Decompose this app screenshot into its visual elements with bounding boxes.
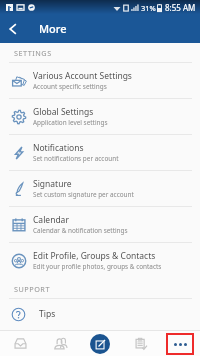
button[interactable]: More: [166, 333, 194, 355]
button[interactable]: Signature: [0, 171, 200, 207]
staticText: Calendar: [33, 214, 69, 226]
staticText: Application level settings: [33, 118, 108, 127]
button[interactable]: Tips: [11, 299, 200, 329]
staticText: Signature: [33, 178, 72, 190]
button[interactable]: Calendar: [0, 207, 200, 243]
staticText: Global Settings: [33, 106, 94, 118]
staticText: Notifications: [33, 142, 84, 154]
button[interactable]: Compose: [90, 334, 110, 354]
staticText: More: [39, 21, 67, 36]
staticText: 8:55 AM: [165, 2, 196, 13]
button[interactable]: Back: [0, 16, 26, 42]
staticText: Set custom signature per account: [33, 190, 134, 199]
button[interactable]: Edit Profile, Groups & Contacts: [0, 243, 200, 279]
button[interactable]: Tasks: [120, 331, 160, 356]
staticText: Edit Profile, Groups & Contacts: [33, 250, 156, 262]
button[interactable]: Contacts: [40, 331, 80, 356]
button[interactable]: Global Settings: [0, 99, 200, 135]
staticText: Account specific settings: [33, 82, 107, 91]
staticText: Edit your profile photos, groups & conta…: [33, 262, 162, 271]
staticText: 31%: [141, 3, 156, 13]
button[interactable]: Notifications: [0, 135, 200, 171]
staticText: Set notifications per account: [33, 154, 119, 163]
staticText: SETTINGS: [14, 48, 52, 58]
staticText: Various Account Settings: [33, 70, 132, 82]
button[interactable]: Inbox: [0, 331, 40, 356]
staticText: SUPPORT: [14, 284, 50, 294]
staticText: Tips: [39, 308, 56, 320]
staticText: Calendar & notification settings: [33, 226, 128, 235]
button[interactable]: Various Account Settings: [0, 63, 200, 99]
